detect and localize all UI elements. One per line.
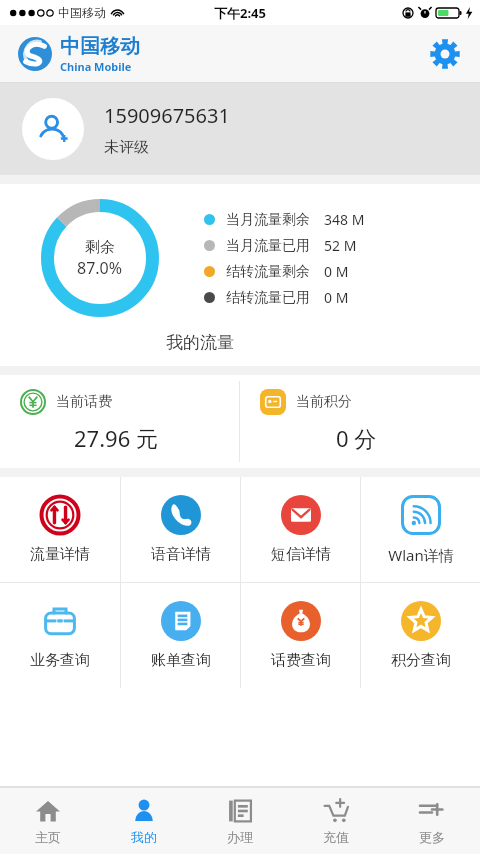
staticText: Wlan详情	[388, 545, 454, 565]
button[interactable]: 语音详情	[121, 477, 240, 582]
button[interactable]: 办理	[192, 788, 288, 854]
staticText: 主页	[35, 829, 61, 845]
button[interactable]: Wlan详情	[361, 477, 480, 582]
staticText: 账单查询	[151, 651, 211, 670]
staticText: 0 M	[324, 262, 349, 281]
staticText: 业务查询	[30, 651, 90, 670]
staticText: 语音详情	[151, 545, 211, 564]
staticText: 348 M	[324, 210, 365, 229]
staticText: 87.0%	[77, 257, 123, 279]
button[interactable]: Settings	[424, 33, 466, 75]
button[interactable]: 流量详情	[0, 477, 120, 582]
staticText: China Mobile	[60, 59, 132, 74]
button[interactable]: 更多	[384, 788, 480, 854]
staticText: 结转流量剩余	[226, 263, 310, 281]
staticText: 办理	[227, 829, 253, 845]
staticText: 27.96 元	[74, 423, 158, 453]
staticText: 短信详情	[271, 545, 331, 564]
staticText: 52 M	[324, 236, 357, 255]
staticText: 话费查询	[271, 651, 331, 670]
staticText: 下午2:45	[214, 4, 266, 22]
button[interactable]: 话费查询	[241, 583, 360, 688]
button[interactable]: 当前话费	[0, 375, 239, 468]
staticText: 当前话费	[56, 393, 112, 411]
staticText: 当前积分	[296, 393, 352, 411]
button[interactable]: 充值	[288, 788, 384, 854]
button[interactable]: 业务查询	[0, 583, 120, 688]
staticText: 中国移动	[58, 5, 106, 20]
staticText: 我的	[131, 829, 157, 845]
button[interactable]: 账单查询	[121, 583, 240, 688]
staticText: 0 M	[324, 288, 349, 307]
button[interactable]: 我的	[96, 788, 192, 854]
staticText: 剩余	[85, 238, 115, 257]
button[interactable]: 短信详情	[241, 477, 360, 582]
staticText: 当月流量剩余	[226, 211, 310, 229]
staticText: 积分查询	[391, 651, 451, 670]
staticText: 15909675631	[104, 102, 230, 129]
button[interactable]: 积分查询	[361, 583, 480, 688]
staticText: 中国移动	[60, 34, 140, 59]
staticText: 我的流量	[166, 332, 234, 353]
button[interactable]: 主页	[0, 788, 96, 854]
staticText: 结转流量已用	[226, 289, 310, 307]
staticText: 流量详情	[30, 545, 90, 564]
staticText: 0 分	[336, 423, 377, 453]
button[interactable]: 15909675631	[0, 83, 480, 175]
button[interactable]: 当前积分	[240, 375, 480, 468]
staticText: 未评级	[104, 138, 149, 157]
staticText: 充值	[323, 829, 349, 845]
staticText: 当月流量已用	[226, 237, 310, 255]
staticText: 更多	[419, 829, 445, 845]
